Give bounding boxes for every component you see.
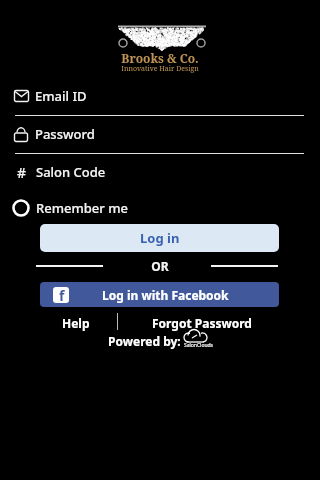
staticText: SalonClouds	[184, 342, 213, 349]
staticText: Salon Code	[36, 163, 106, 181]
staticText: Remember me	[36, 199, 128, 217]
button[interactable]: Remember me	[12, 198, 320, 218]
staticText: Powered by:	[108, 333, 181, 349]
button[interactable]: Forgot Password	[152, 315, 252, 331]
staticText: f	[59, 287, 65, 302]
staticText: Brooks & Co.	[0, 50, 320, 66]
button[interactable]: #	[17, 162, 320, 182]
staticText: Email ID	[35, 87, 87, 105]
staticText: Password	[35, 125, 95, 143]
button[interactable]: Help	[62, 315, 90, 331]
button[interactable]: Log in	[40, 224, 279, 252]
staticText: #	[17, 163, 27, 182]
staticText: OR	[0, 258, 320, 274]
button[interactable]: Email ID	[14, 86, 320, 106]
staticText: Log in	[140, 229, 180, 247]
button[interactable]: f	[40, 282, 279, 307]
button[interactable]: Password	[14, 124, 320, 144]
staticText: Innovative Hair Design	[0, 64, 320, 74]
staticText: Log in with Facebook	[102, 287, 229, 303]
